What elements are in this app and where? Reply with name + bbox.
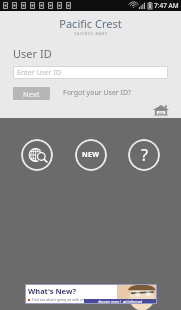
staticText: Enter User ID	[17, 68, 62, 78]
staticText: NEW	[82, 150, 100, 160]
button[interactable]: Forgot your User ID?	[61, 86, 134, 100]
staticText: 7:47 AM	[154, 1, 179, 10]
staticText: Pacific Crest	[59, 16, 122, 31]
button[interactable]: Find a branch	[21, 139, 53, 171]
button[interactable]: Advertisement: What's New?	[25, 284, 157, 304]
staticText: User ID	[13, 46, 52, 61]
staticText: ?	[141, 144, 148, 166]
staticText: What's New?	[28, 286, 77, 296]
button[interactable]: What's new	[75, 139, 107, 171]
staticText: SAVINGS BANK	[74, 31, 108, 36]
staticText: Find out what's going on with us!	[32, 297, 85, 302]
staticText: discover more | get informed	[98, 300, 143, 304]
button[interactable]: Help	[128, 139, 160, 171]
button[interactable]: Next	[13, 87, 50, 100]
staticText: Next	[23, 89, 40, 99]
button[interactable]: Enter User ID	[13, 66, 168, 79]
other: Equal Housing Lender	[152, 102, 170, 118]
staticText: Forgot your User ID?	[63, 88, 132, 98]
